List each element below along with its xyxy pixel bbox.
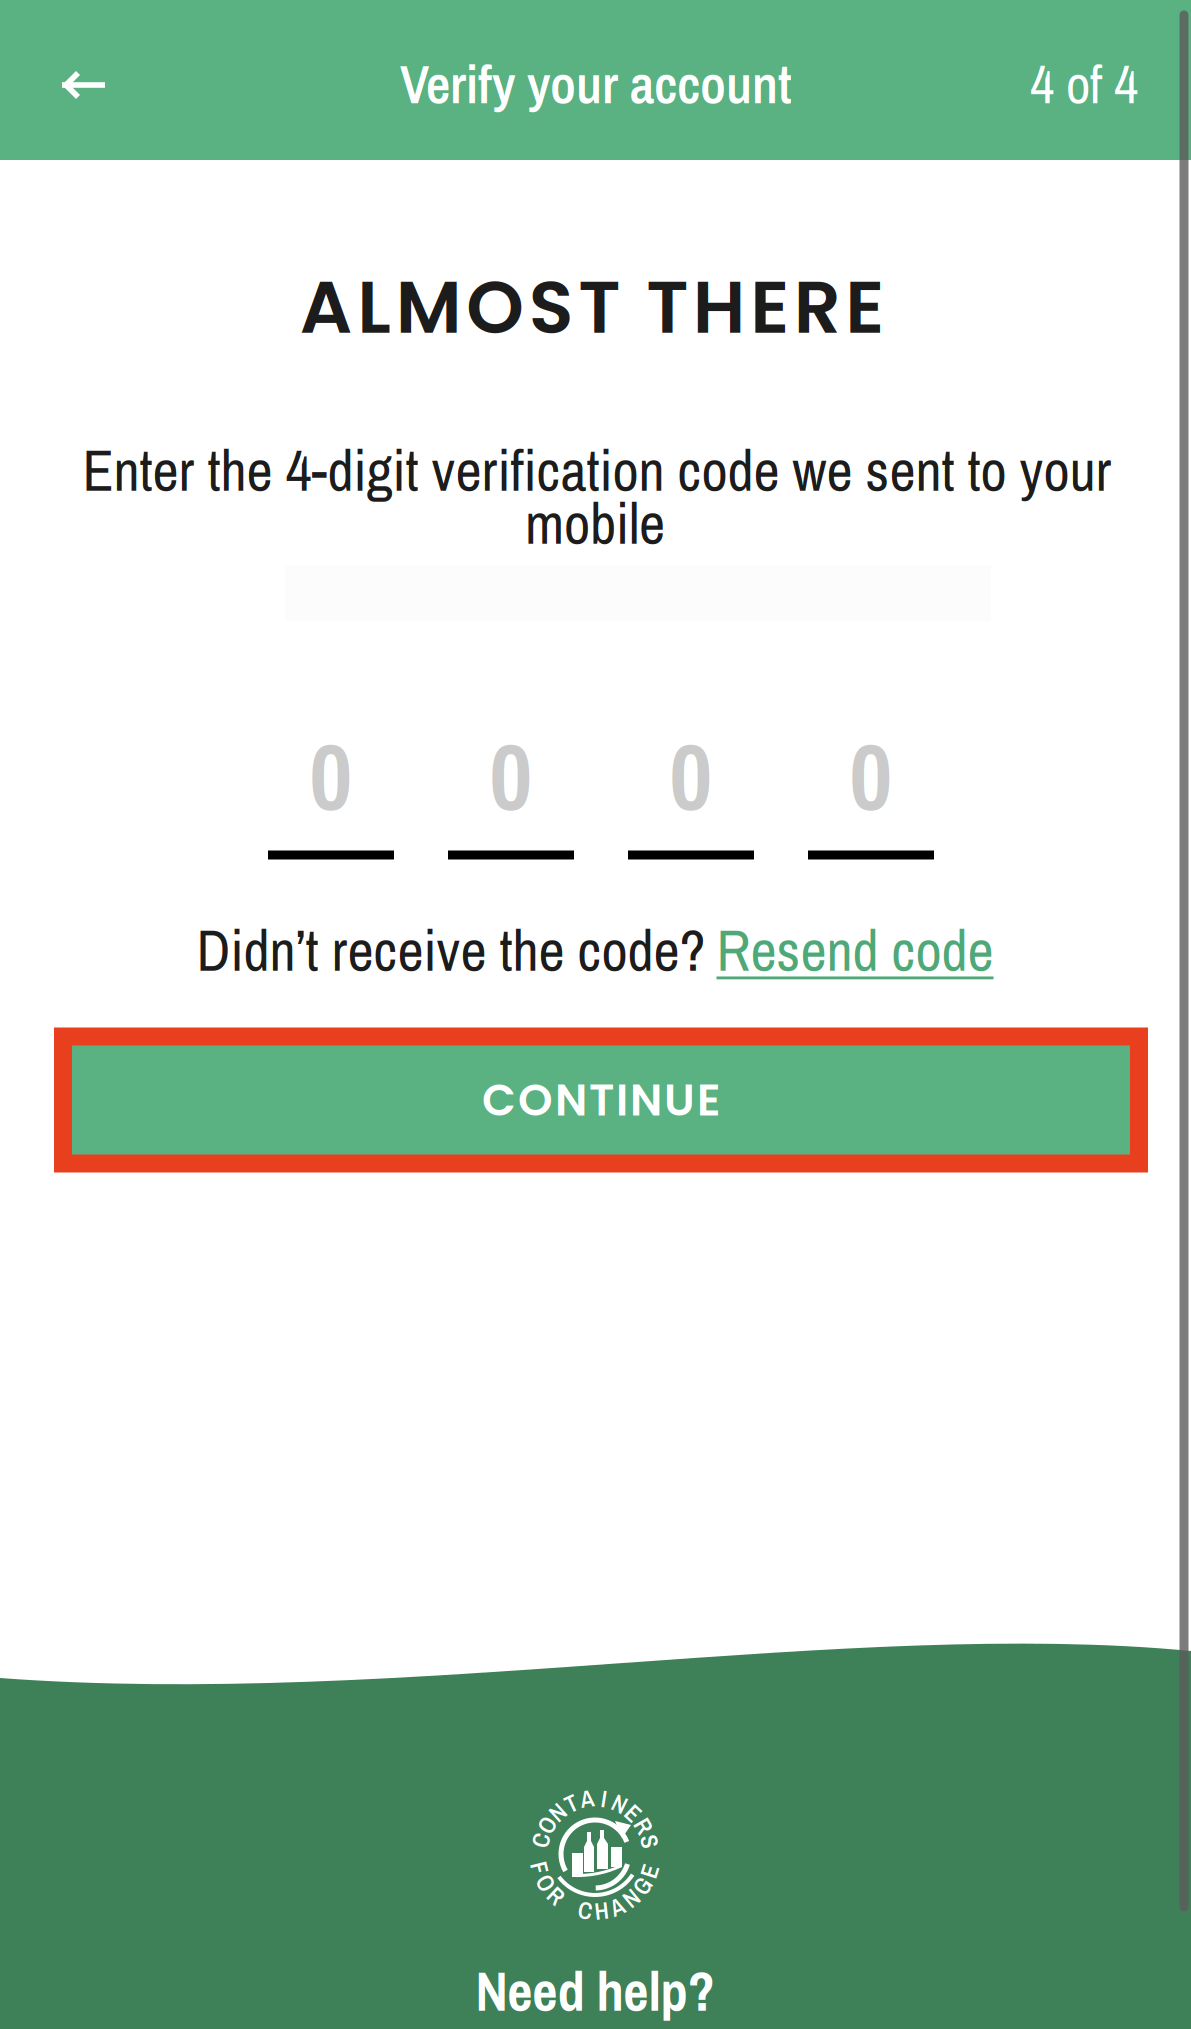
button[interactable]: CONTINUE [54, 1027, 1148, 1172]
staticText: T [589, 1782, 601, 1814]
staticText: C [588, 1782, 602, 1814]
staticText: Enter the 4-digit verification code we s… [82, 431, 1111, 509]
staticText: A [588, 1782, 602, 1814]
staticText: 0 [669, 713, 712, 839]
staticText: E [588, 1782, 601, 1814]
staticText: Resend code [716, 911, 993, 989]
staticText: R [588, 1782, 602, 1814]
staticText: N [588, 1781, 602, 1813]
staticText: N [588, 1782, 602, 1814]
staticText: 0 [849, 713, 892, 839]
staticText: Need help? [475, 1954, 714, 2028]
staticText: G [587, 1781, 602, 1813]
staticText: Verify your account [400, 48, 792, 120]
staticText: E [588, 1781, 601, 1813]
staticText: S [588, 1782, 601, 1814]
staticText [592, 1781, 597, 1813]
staticText: mobile [525, 484, 665, 562]
staticText: N [588, 1782, 602, 1814]
staticText: F [589, 1781, 601, 1813]
staticText: H [588, 1781, 602, 1813]
button[interactable]: Back [22, 5, 142, 165]
staticText: O [587, 1782, 602, 1814]
staticText: A [588, 1781, 602, 1813]
staticText: ALMOST THERE [300, 256, 884, 358]
staticText: O [587, 1781, 602, 1813]
staticText: Didn’t receive the code? [196, 911, 705, 989]
button[interactable]: Resend code [716, 911, 993, 989]
staticText: 0 [309, 713, 352, 839]
button[interactable]: Need help? [395, 1955, 795, 2027]
staticText: 4 of 4 [1030, 48, 1138, 120]
staticText: I [592, 1782, 597, 1814]
staticText: CONTINUE [482, 1069, 720, 1131]
staticText: 0 [489, 713, 532, 839]
staticText: R [588, 1781, 602, 1813]
staticText: C [588, 1781, 602, 1813]
